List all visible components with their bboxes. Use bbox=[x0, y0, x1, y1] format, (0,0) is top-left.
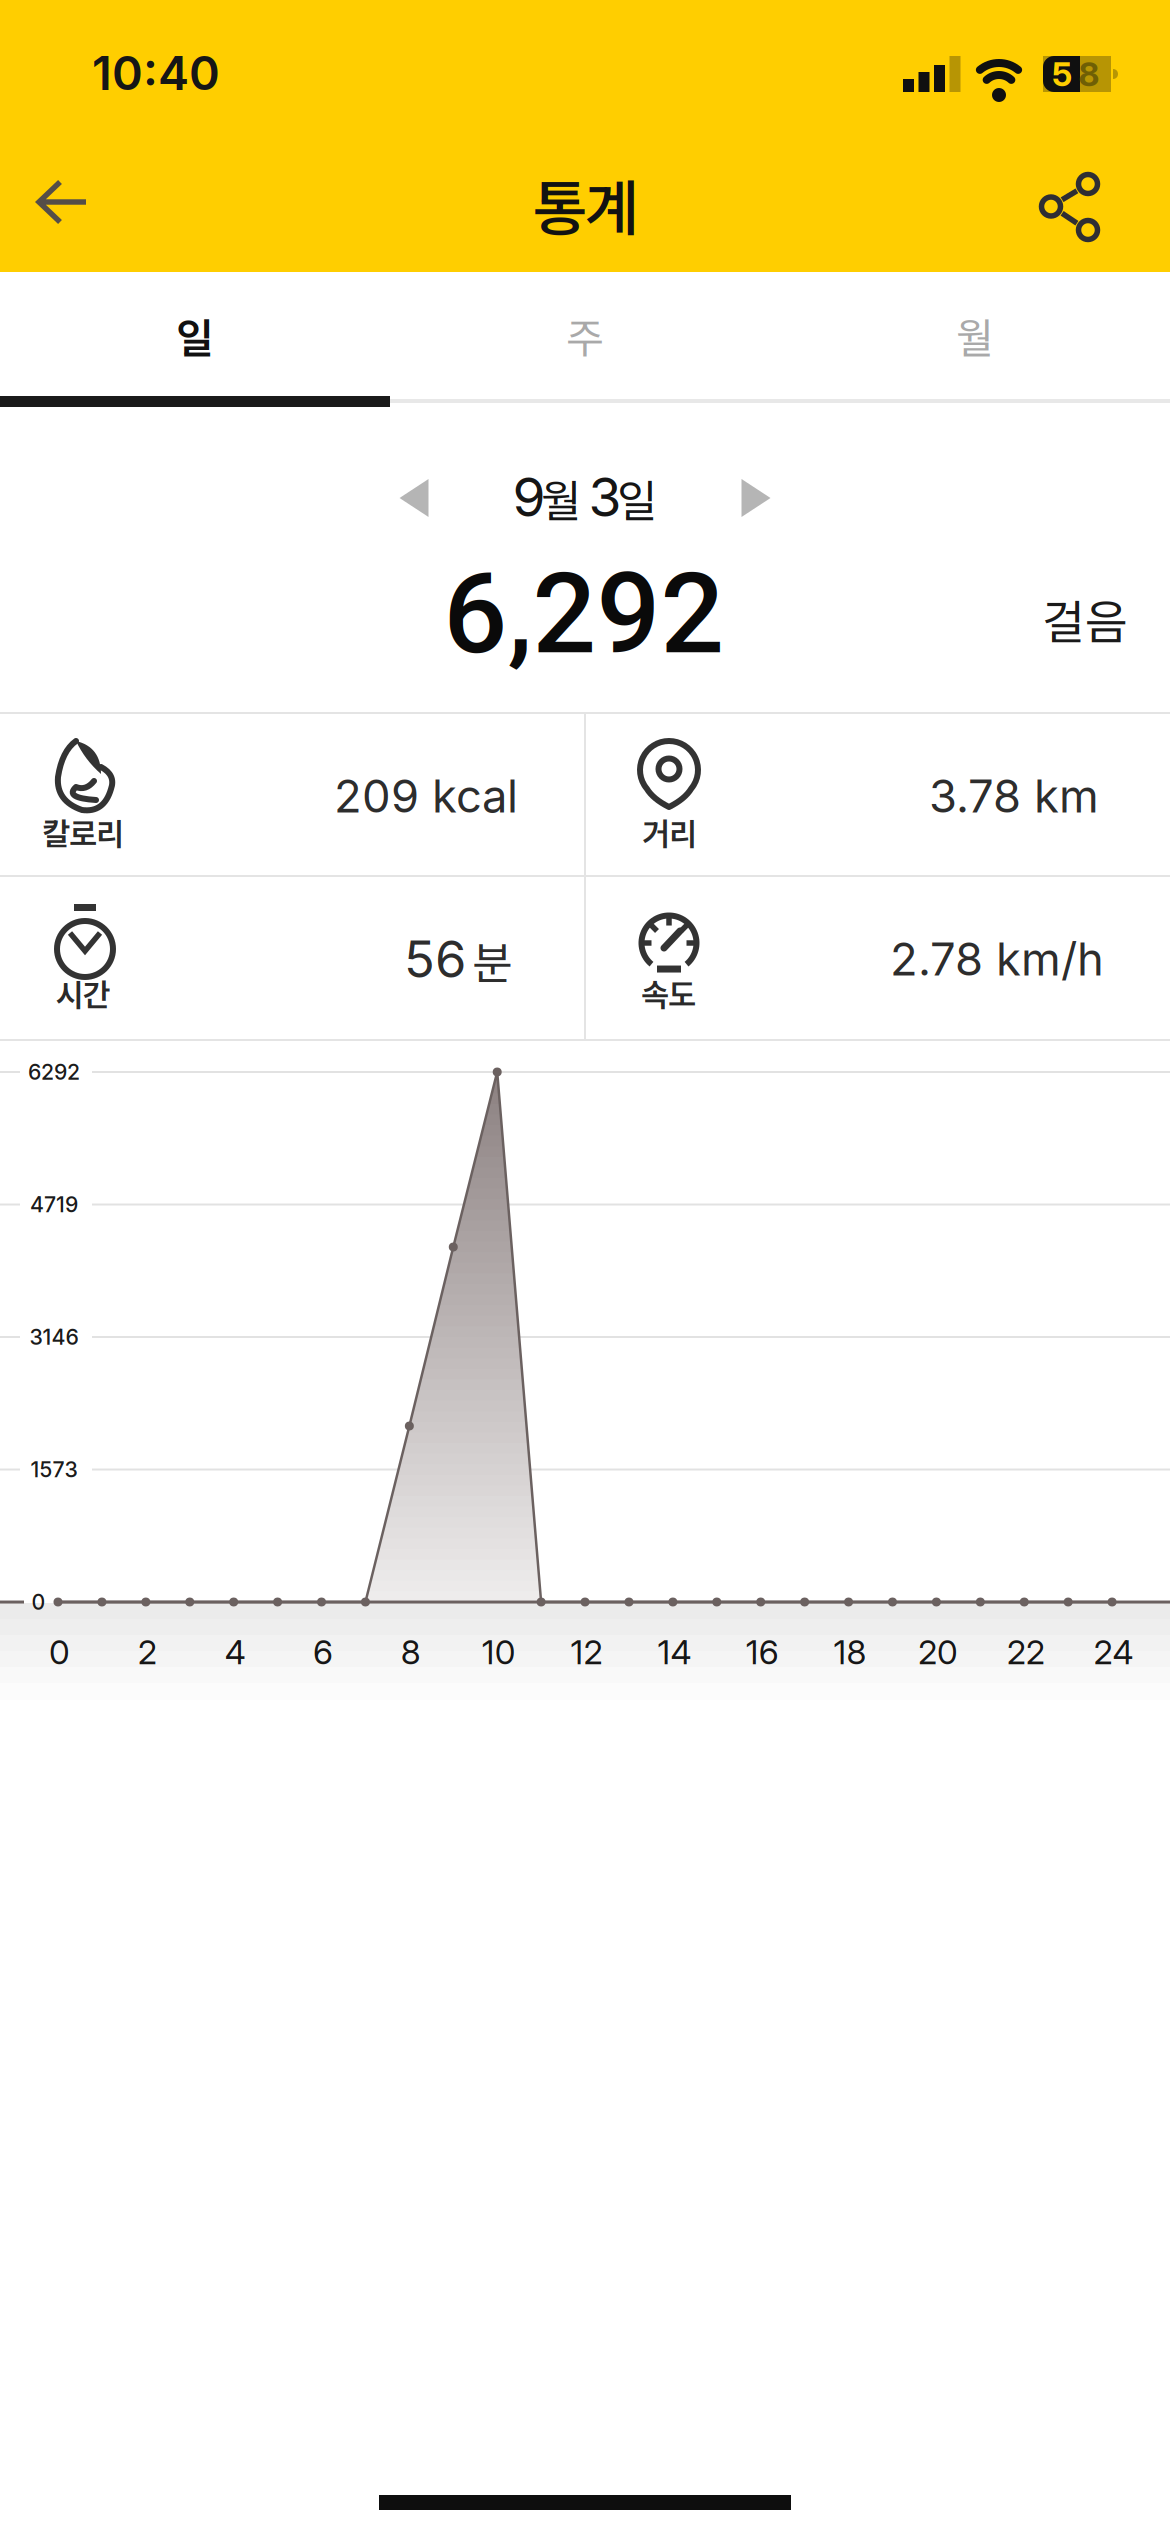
staticText: 20 bbox=[918, 1632, 958, 1672]
staticText: 4719 bbox=[30, 1192, 78, 1217]
staticText: 시간 bbox=[55, 971, 110, 1015]
staticText: 일 bbox=[617, 466, 657, 530]
staticText: 칼로리 bbox=[42, 810, 124, 854]
button[interactable]: 뒤로 bbox=[34, 181, 90, 225]
staticText: 10:40 bbox=[92, 45, 220, 101]
staticText: 9 bbox=[512, 465, 545, 529]
button[interactable]: 일 bbox=[0, 275, 390, 395]
button[interactable]: 공유 bbox=[1041, 174, 1105, 239]
staticText: 거리 bbox=[642, 810, 697, 854]
staticText: 통계 bbox=[532, 161, 639, 247]
staticText: 4 bbox=[225, 1632, 246, 1672]
staticText: 14 bbox=[657, 1632, 691, 1672]
staticText: 일 bbox=[176, 306, 214, 365]
staticText: 12 bbox=[570, 1632, 602, 1672]
staticText: 3.78 km bbox=[929, 769, 1099, 823]
button[interactable]: 이전 날짜 bbox=[399, 479, 428, 517]
staticText: 걸음 bbox=[1042, 585, 1128, 653]
staticText: 월 bbox=[541, 466, 581, 530]
staticText: 56 bbox=[404, 928, 466, 990]
staticText: 18 bbox=[834, 1632, 867, 1672]
staticText: 22 bbox=[1007, 1632, 1045, 1672]
staticText: 6292 bbox=[28, 1059, 80, 1085]
staticText: 3 bbox=[588, 465, 621, 529]
staticText: 0 bbox=[49, 1632, 70, 1672]
staticText: 24 bbox=[1094, 1632, 1134, 1672]
staticText: 1573 bbox=[30, 1457, 77, 1482]
button[interactable]: 다음 날짜 bbox=[741, 479, 770, 517]
staticText: 월 bbox=[956, 306, 994, 365]
button[interactable]: 월 bbox=[780, 275, 1170, 395]
staticText: 주 bbox=[566, 306, 604, 365]
button[interactable]: 주 bbox=[390, 275, 780, 395]
staticText: 3146 bbox=[29, 1324, 78, 1350]
staticText: 6 bbox=[313, 1632, 333, 1672]
staticText: 8 bbox=[1078, 54, 1099, 94]
staticText: 10 bbox=[482, 1632, 516, 1672]
staticText: 209 kcal bbox=[334, 769, 518, 823]
staticText: 16 bbox=[746, 1632, 779, 1672]
staticText: 8 bbox=[401, 1632, 421, 1672]
staticText: 0 bbox=[31, 1589, 45, 1615]
staticText: 5 bbox=[1052, 54, 1072, 94]
staticText: 6,292 bbox=[443, 548, 724, 680]
staticText: 2.78 km/h bbox=[890, 932, 1104, 986]
staticText: 2 bbox=[138, 1632, 157, 1672]
staticText: 분 bbox=[472, 928, 512, 992]
staticText: 속도 bbox=[641, 971, 696, 1015]
